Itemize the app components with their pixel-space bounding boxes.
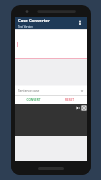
button[interactable]: Close ad [81,105,86,110]
staticText: Sentence case [18,89,80,93]
button[interactable]: RESET [51,96,87,104]
button[interactable]: Ad information [15,104,87,136]
staticText: CONVERT [26,98,41,102]
staticText: Text Version [18,25,33,29]
button[interactable]: Ad information [75,105,80,110]
button[interactable]: Sentence case [15,86,87,95]
button[interactable]: CONVERT [15,96,51,104]
button[interactable]: Case Converter [15,17,87,29]
button[interactable] [15,30,87,59]
staticText: RESET [65,98,74,102]
staticText: Case Converter [18,18,50,24]
button[interactable]: Info [76,19,84,27]
